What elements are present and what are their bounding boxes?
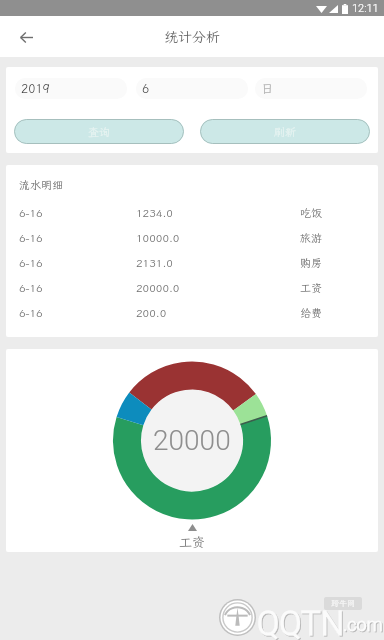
staticText: 工资	[179, 534, 206, 551]
button[interactable]: 查询	[14, 119, 184, 144]
button[interactable]: 6	[136, 78, 248, 99]
staticText: 6-16	[19, 306, 136, 320]
staticText: 刷新	[274, 125, 296, 139]
staticText: 日	[261, 81, 274, 97]
staticText: 查询	[88, 125, 110, 139]
staticText: 1234.0	[136, 206, 300, 220]
button[interactable]: 6-16	[6, 225, 378, 250]
staticText: 200.0	[136, 306, 300, 320]
staticText: 跨牛网	[331, 598, 355, 609]
staticText: 20000	[153, 424, 231, 457]
staticText: 10000.0	[136, 231, 300, 245]
staticText: QQTN	[257, 604, 345, 640]
button[interactable]: 刷新	[200, 119, 370, 144]
button[interactable]: 6-16	[6, 275, 378, 300]
staticText: 吃饭	[300, 206, 378, 220]
staticText: 12:11	[352, 2, 379, 15]
button[interactable]: 6-16	[6, 200, 378, 225]
button[interactable]: 6-16	[6, 300, 378, 325]
staticText: 6-16	[19, 281, 136, 295]
staticText: 6-16	[19, 231, 136, 245]
button[interactable]: Back	[11, 22, 41, 52]
staticText: 统计分析	[164, 28, 220, 46]
staticText: .com	[343, 614, 383, 635]
staticText: 6	[142, 81, 150, 97]
staticText: QQTN	[258, 605, 346, 640]
staticText: 2019	[21, 81, 50, 97]
staticText: 旅游	[300, 231, 378, 245]
staticText: 流水明细	[19, 178, 63, 192]
staticText: .com	[344, 615, 384, 636]
staticText: 20000.0	[136, 281, 300, 295]
staticText: 6-16	[19, 206, 136, 220]
staticText: 工资	[300, 281, 378, 295]
staticText: 6-16	[19, 256, 136, 270]
button[interactable]: 2019	[15, 78, 127, 99]
button[interactable]: 日	[255, 78, 367, 99]
staticText: 给费	[300, 306, 378, 320]
button[interactable]: 6-16	[6, 250, 378, 275]
staticText: 购房	[300, 256, 378, 270]
staticText: 2131.0	[136, 256, 300, 270]
